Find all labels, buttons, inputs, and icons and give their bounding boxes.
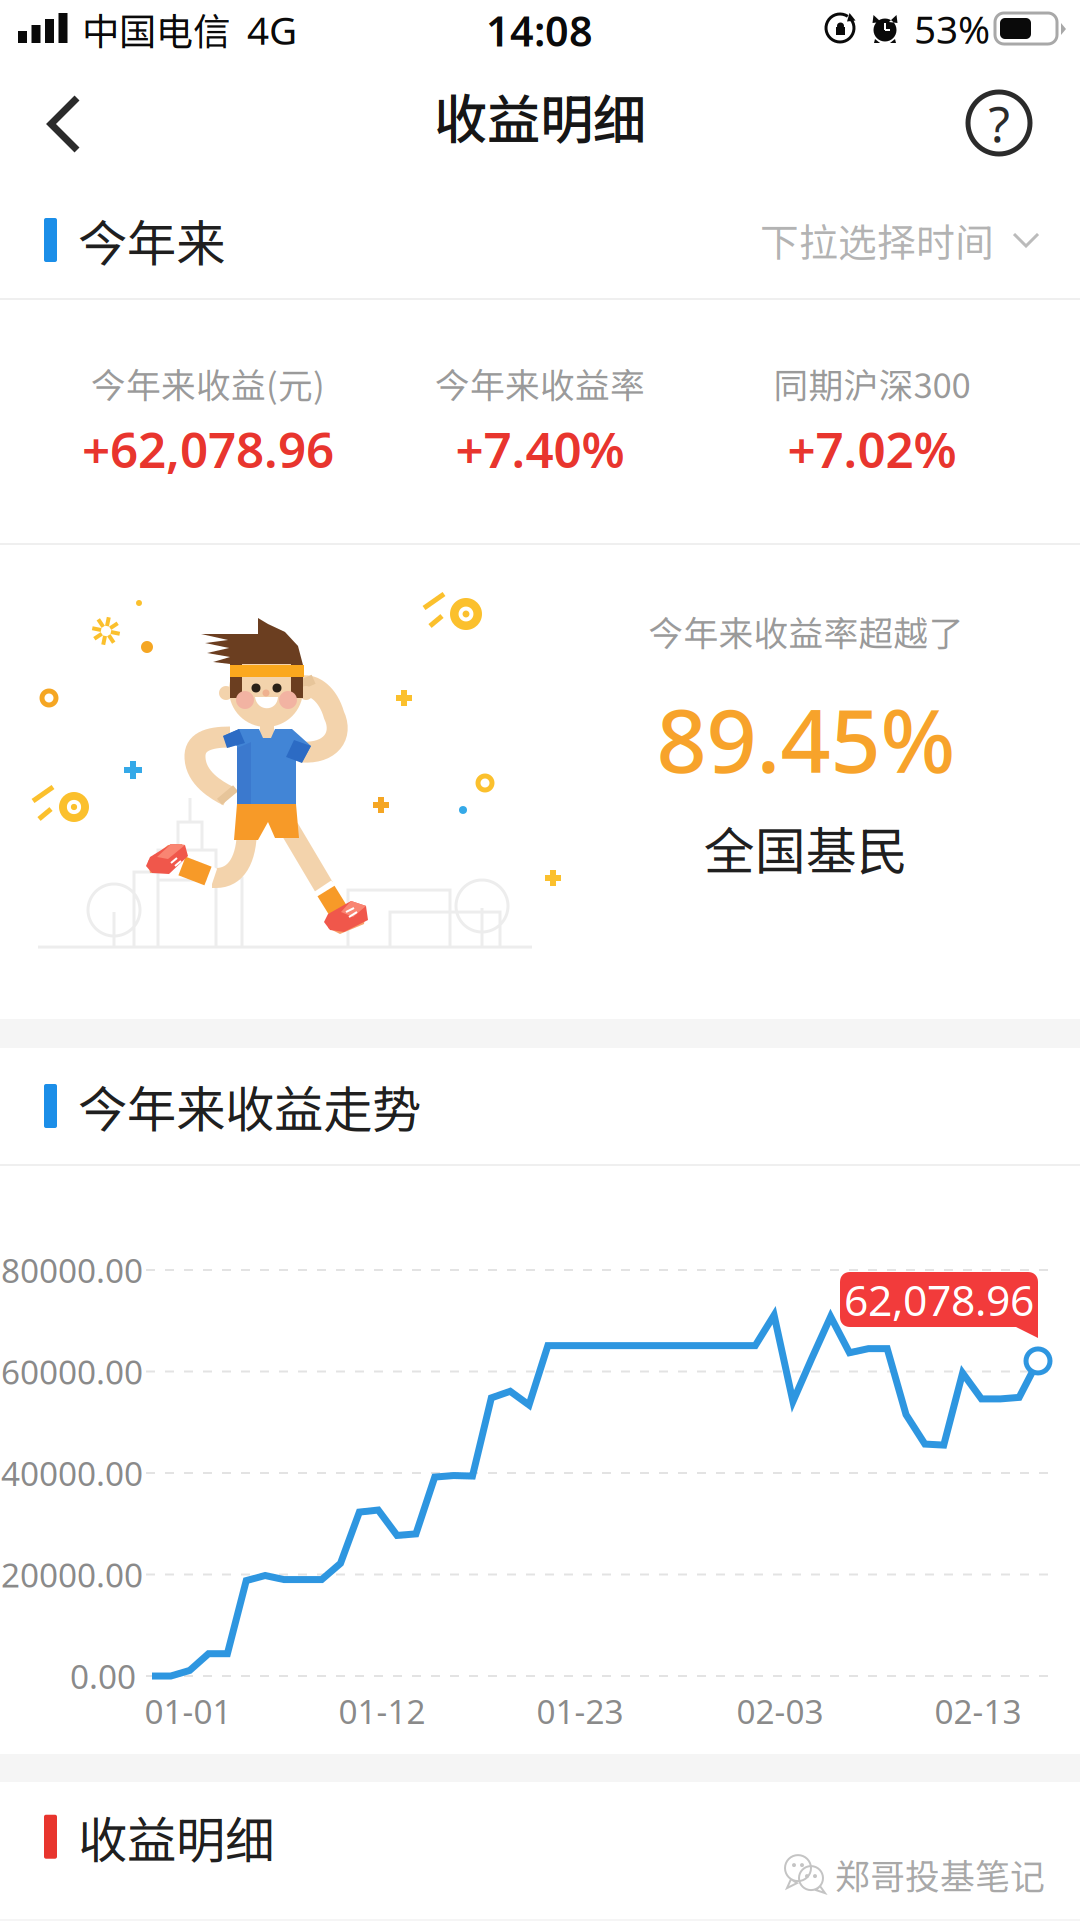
staticText: 今年来收益率超越了 [648,606,963,656]
staticText: 14:08 [486,3,593,58]
staticText: 01-12 [338,1689,425,1733]
staticText: +7.02% [787,416,956,482]
staticText: 40000.00 [1,1451,143,1495]
staticText: 60000.00 [1,1349,143,1394]
staticText: 今年来 [78,204,225,276]
staticText: 0.00 [70,1654,136,1698]
staticText: 全国基民 [704,811,908,884]
staticText: 中国电信 [82,2,230,56]
button[interactable]: Help [938,62,1080,182]
staticText: 80000.00 [1,1248,143,1292]
staticText: 今年来收益(元) [91,358,325,408]
staticText: 01-01 [144,1689,231,1733]
staticText: 02-13 [934,1689,1021,1733]
staticText: +62,078.96 [82,416,334,482]
staticText: ? [988,90,1009,156]
staticText: 53% [914,3,990,54]
button[interactable]: 下拉选择时间 [760,190,1040,290]
staticText: 收益明细 [78,1801,274,1872]
staticText: 20000.00 [1,1552,143,1597]
staticText: 收益明细 [434,77,646,155]
staticText: 同期沪深300 [773,358,970,408]
button[interactable]: Back [0,62,115,182]
staticText: 郑哥投基笔记 [835,1849,1045,1899]
staticText: 下拉选择时间 [760,212,994,268]
staticText: 89.45% [656,680,955,797]
staticText: 62,078.96 [844,1271,1034,1328]
staticText: 01-23 [536,1689,623,1733]
staticText: 今年来收益率 [435,358,645,408]
staticText: +7.40% [455,416,624,482]
staticText: 02-03 [736,1689,823,1733]
staticText: 4G [247,4,297,55]
staticText: 今年来收益走势 [78,1070,421,1142]
